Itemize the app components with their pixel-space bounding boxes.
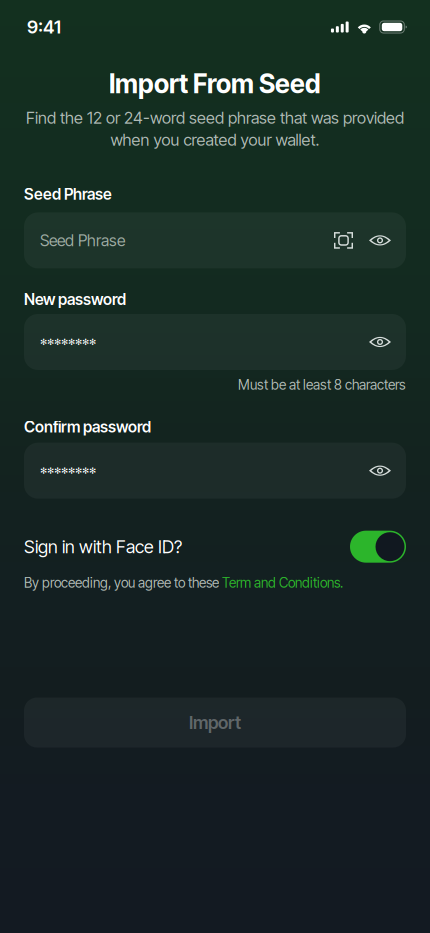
button[interactable]: Sign in with Face ID [350,531,406,563]
staticText: Find the 12 or 24-word seed phrase that … [26,108,404,128]
staticText: Sign in with Face ID? [24,536,182,557]
staticText: Import From Seed [109,68,321,99]
staticText: Must be at least 8 characters [238,376,406,393]
staticText: By proceeding, you agree to these [24,575,222,591]
staticText: Confirm password [24,417,151,436]
staticText: ✻✻✻✻✻✻✻✻ [40,466,96,476]
button[interactable]: Scan QR code [334,232,353,249]
staticText: ✻✻✻✻✻✻✻✻ [40,337,96,347]
button[interactable]: Import [0,697,430,747]
staticText: Seed Phrase [24,185,112,203]
staticText: Term and Conditions. [222,575,343,591]
staticText: New password [24,290,126,309]
staticText: 9:41 [27,16,61,38]
staticText: Import [189,712,241,733]
button[interactable]: Show seed phrase [369,233,391,247]
button[interactable]: Show new password [369,335,391,349]
staticText: when you created your wallet. [110,130,319,150]
button[interactable]: Show confirm password [369,464,391,478]
staticText: Seed Phrase [40,231,125,250]
button[interactable]: Term and Conditions. [222,575,343,591]
